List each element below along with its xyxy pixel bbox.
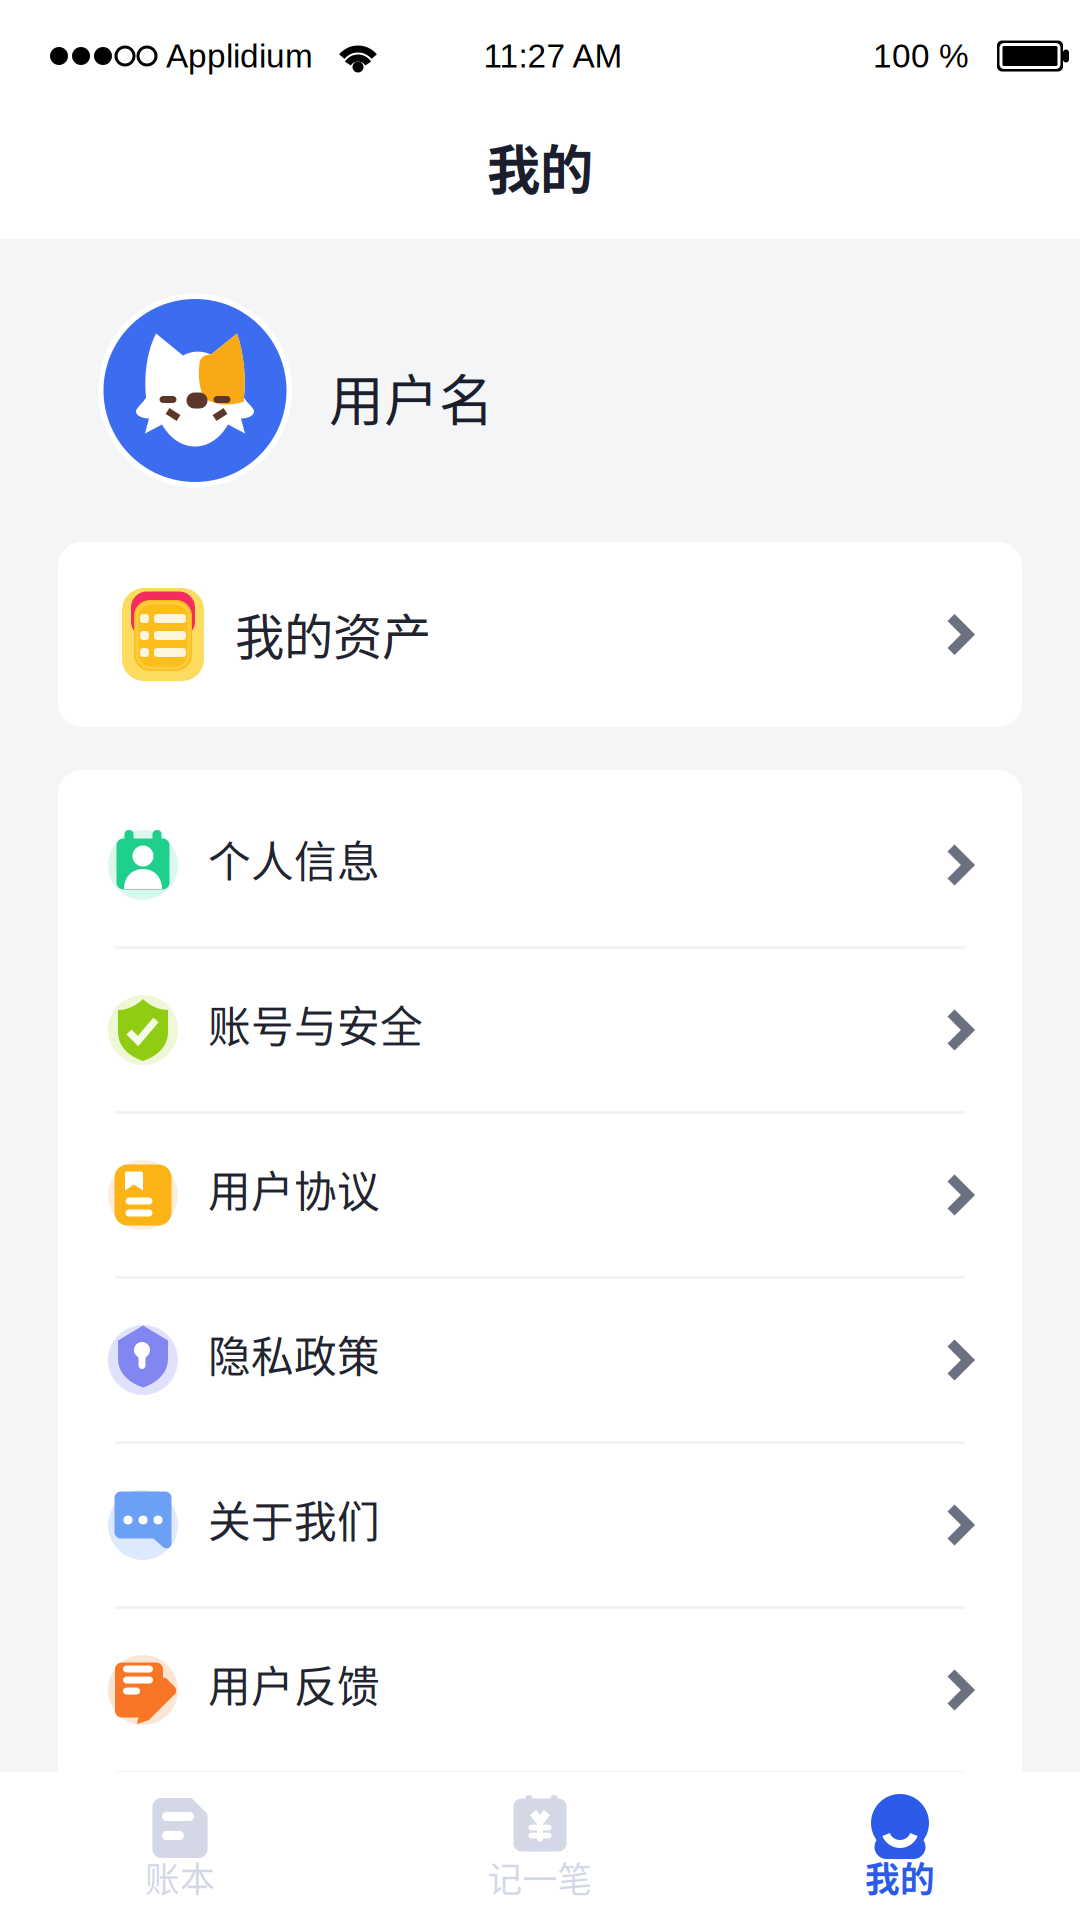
button[interactable]: 账本 xyxy=(0,1772,360,1920)
staticText: 我的 xyxy=(487,128,593,205)
staticText: 账本 xyxy=(145,1852,215,1902)
staticText: 11:27 AM xyxy=(483,37,622,75)
button[interactable]: 我的 xyxy=(720,1772,1080,1920)
button[interactable]: 用户反馈 xyxy=(58,1609,1022,1771)
staticText: 用户名 xyxy=(329,357,494,436)
staticText: 用户反馈 xyxy=(208,1653,380,1715)
staticText: 关于我们 xyxy=(208,1488,380,1550)
staticText: 我的 xyxy=(865,1852,935,1902)
staticText: 100 % xyxy=(873,37,969,75)
button[interactable]: 我的资产 xyxy=(58,542,1022,727)
button[interactable]: 关于我们 xyxy=(58,1444,1022,1606)
staticText: 记一笔 xyxy=(487,1852,592,1902)
staticText: 账号与安全 xyxy=(208,993,423,1055)
button[interactable]: 隐私政策 xyxy=(58,1279,1022,1441)
staticText: 个人信息 xyxy=(208,828,380,890)
staticText: 隐私政策 xyxy=(208,1323,380,1385)
button[interactable]: 记一笔 xyxy=(360,1772,720,1920)
staticText: Applidium xyxy=(166,37,313,75)
staticText: 用户协议 xyxy=(208,1158,380,1220)
button[interactable]: 个人信息 xyxy=(58,784,1022,946)
button[interactable]: 账号与安全 xyxy=(58,949,1022,1111)
staticText: 我的资产 xyxy=(235,598,431,669)
button[interactable]: 用户协议 xyxy=(58,1114,1022,1276)
